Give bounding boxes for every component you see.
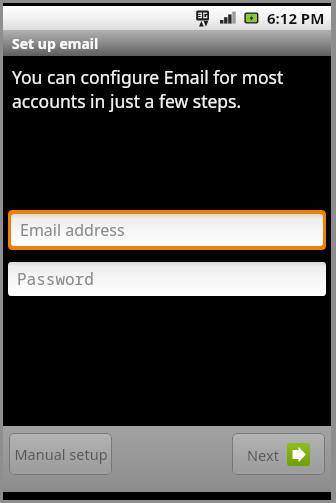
staticText: Email address xyxy=(20,219,125,241)
staticText: Set up email xyxy=(12,34,99,53)
staticText: Manual setup xyxy=(14,444,108,464)
button[interactable]: Next xyxy=(232,433,325,475)
button[interactable]: Password xyxy=(8,261,326,297)
staticText: 6:12 PM xyxy=(267,8,325,28)
staticText: You can configure Email for most account… xyxy=(12,65,319,113)
button[interactable]: Manual setup xyxy=(9,433,112,475)
button[interactable]: Email address xyxy=(8,210,326,250)
other: Next xyxy=(287,443,310,466)
staticText: Next xyxy=(247,445,279,465)
staticText: Password xyxy=(17,268,94,290)
